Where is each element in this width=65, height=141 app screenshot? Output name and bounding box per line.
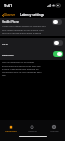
button[interactable]: Bluetooth	[0, 48, 65, 60]
staticText: 9:41	[4, 3, 13, 9]
button[interactable]: Wi-Fi	[0, 38, 65, 48]
button[interactable]: Dashboard	[0, 122, 21, 134]
staticText: Wi-Fi	[2, 42, 8, 45]
button[interactable]: Toggle on	[53, 51, 63, 57]
staticText: Observe	[4, 13, 15, 17]
staticText: Bluetooth	[2, 53, 14, 56]
button[interactable]: Settings	[43, 122, 65, 134]
staticText: Observe	[28, 130, 37, 133]
staticText: Latency settings	[20, 13, 45, 17]
button[interactable]: Toggle off	[52, 19, 62, 25]
staticText: Turn on Bluetooth to let nearby accessor…	[2, 61, 46, 76]
staticText: Allows your nearby devices to connect an…	[2, 25, 47, 36]
button[interactable]: Observe	[0, 13, 17, 17]
staticText: Dashboard	[5, 130, 17, 133]
staticText: Health iPhone	[2, 20, 19, 23]
staticText: Settings	[50, 130, 59, 133]
button[interactable]: Observe	[21, 122, 43, 134]
button[interactable]: Toggle off	[53, 40, 63, 46]
